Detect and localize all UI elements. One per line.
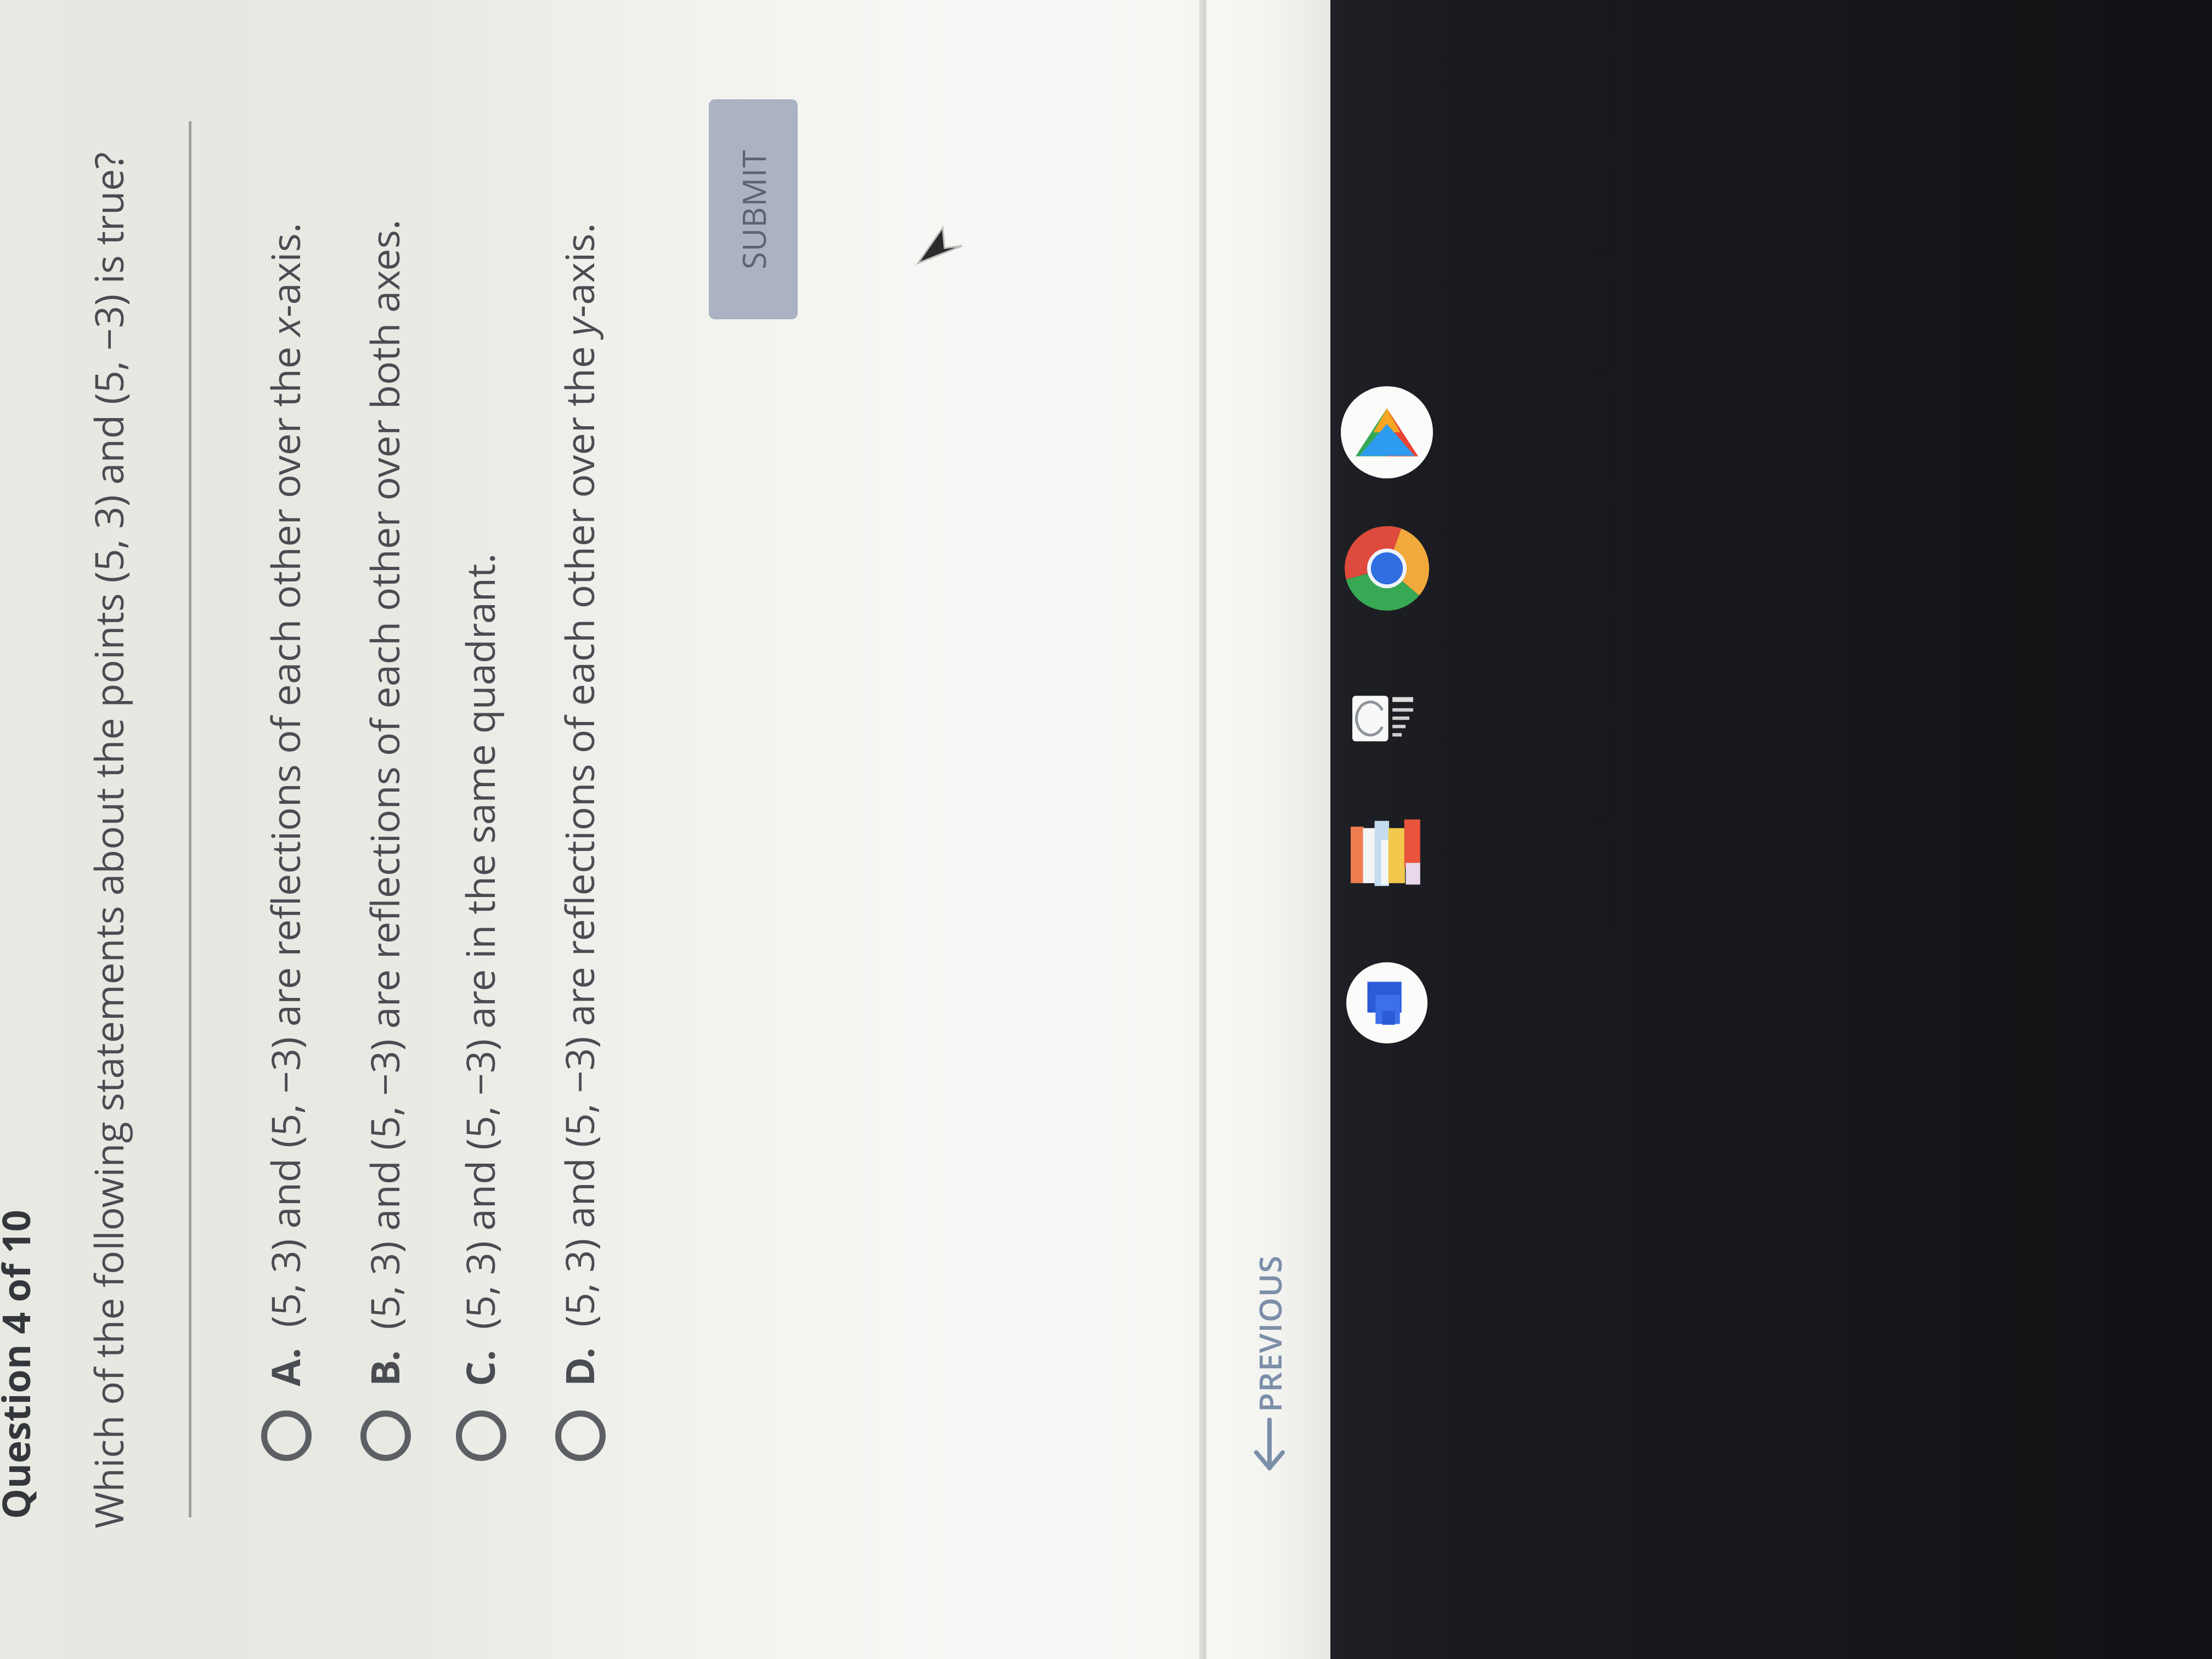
button[interactable]: Choose option B. bbox=[360, 1410, 411, 1461]
button[interactable]: Choose option C. bbox=[456, 1410, 506, 1461]
staticText: D. (5, 3) and (5, −3) are reflections of… bbox=[552, 223, 606, 1386]
button[interactable]: PREVIOUS bbox=[1239, 1255, 1300, 1472]
button[interactable]: Chrome bbox=[1345, 526, 1429, 611]
staticText: Which of the following statements about … bbox=[81, 152, 135, 1528]
button[interactable]: SUBMIT bbox=[709, 99, 798, 319]
staticText: SUBMIT bbox=[732, 149, 775, 269]
staticText: Question 4 of 10 bbox=[0, 1210, 41, 1519]
staticText: B. (5, 3) and (5, −3) are reflections of… bbox=[357, 219, 411, 1386]
button[interactable]: Drive bbox=[1341, 386, 1433, 478]
button[interactable]: C. (5, 3) and (5, −3) are in the same qu… bbox=[453, 553, 506, 1386]
button[interactable]: Office bbox=[1346, 962, 1427, 1043]
button[interactable]: Gallery bbox=[1351, 818, 1423, 890]
button[interactable]: Choose option A. bbox=[261, 1410, 312, 1461]
staticText: A. (5, 3) and (5, −3) are reflections of… bbox=[258, 222, 312, 1386]
button[interactable]: B. (5, 3) and (5, −3) are reflections of… bbox=[357, 219, 411, 1386]
button[interactable]: D. (5, 3) and (5, −3) are reflections of… bbox=[552, 223, 606, 1386]
staticText: C. (5, 3) and (5, −3) are in the same qu… bbox=[453, 553, 506, 1386]
button[interactable]: Choose option D. bbox=[555, 1410, 606, 1461]
button[interactable]: A. (5, 3) and (5, −3) are reflections of… bbox=[258, 222, 312, 1386]
staticText: PREVIOUS bbox=[1248, 1255, 1291, 1412]
button[interactable]: Screenshot bbox=[1352, 685, 1421, 754]
